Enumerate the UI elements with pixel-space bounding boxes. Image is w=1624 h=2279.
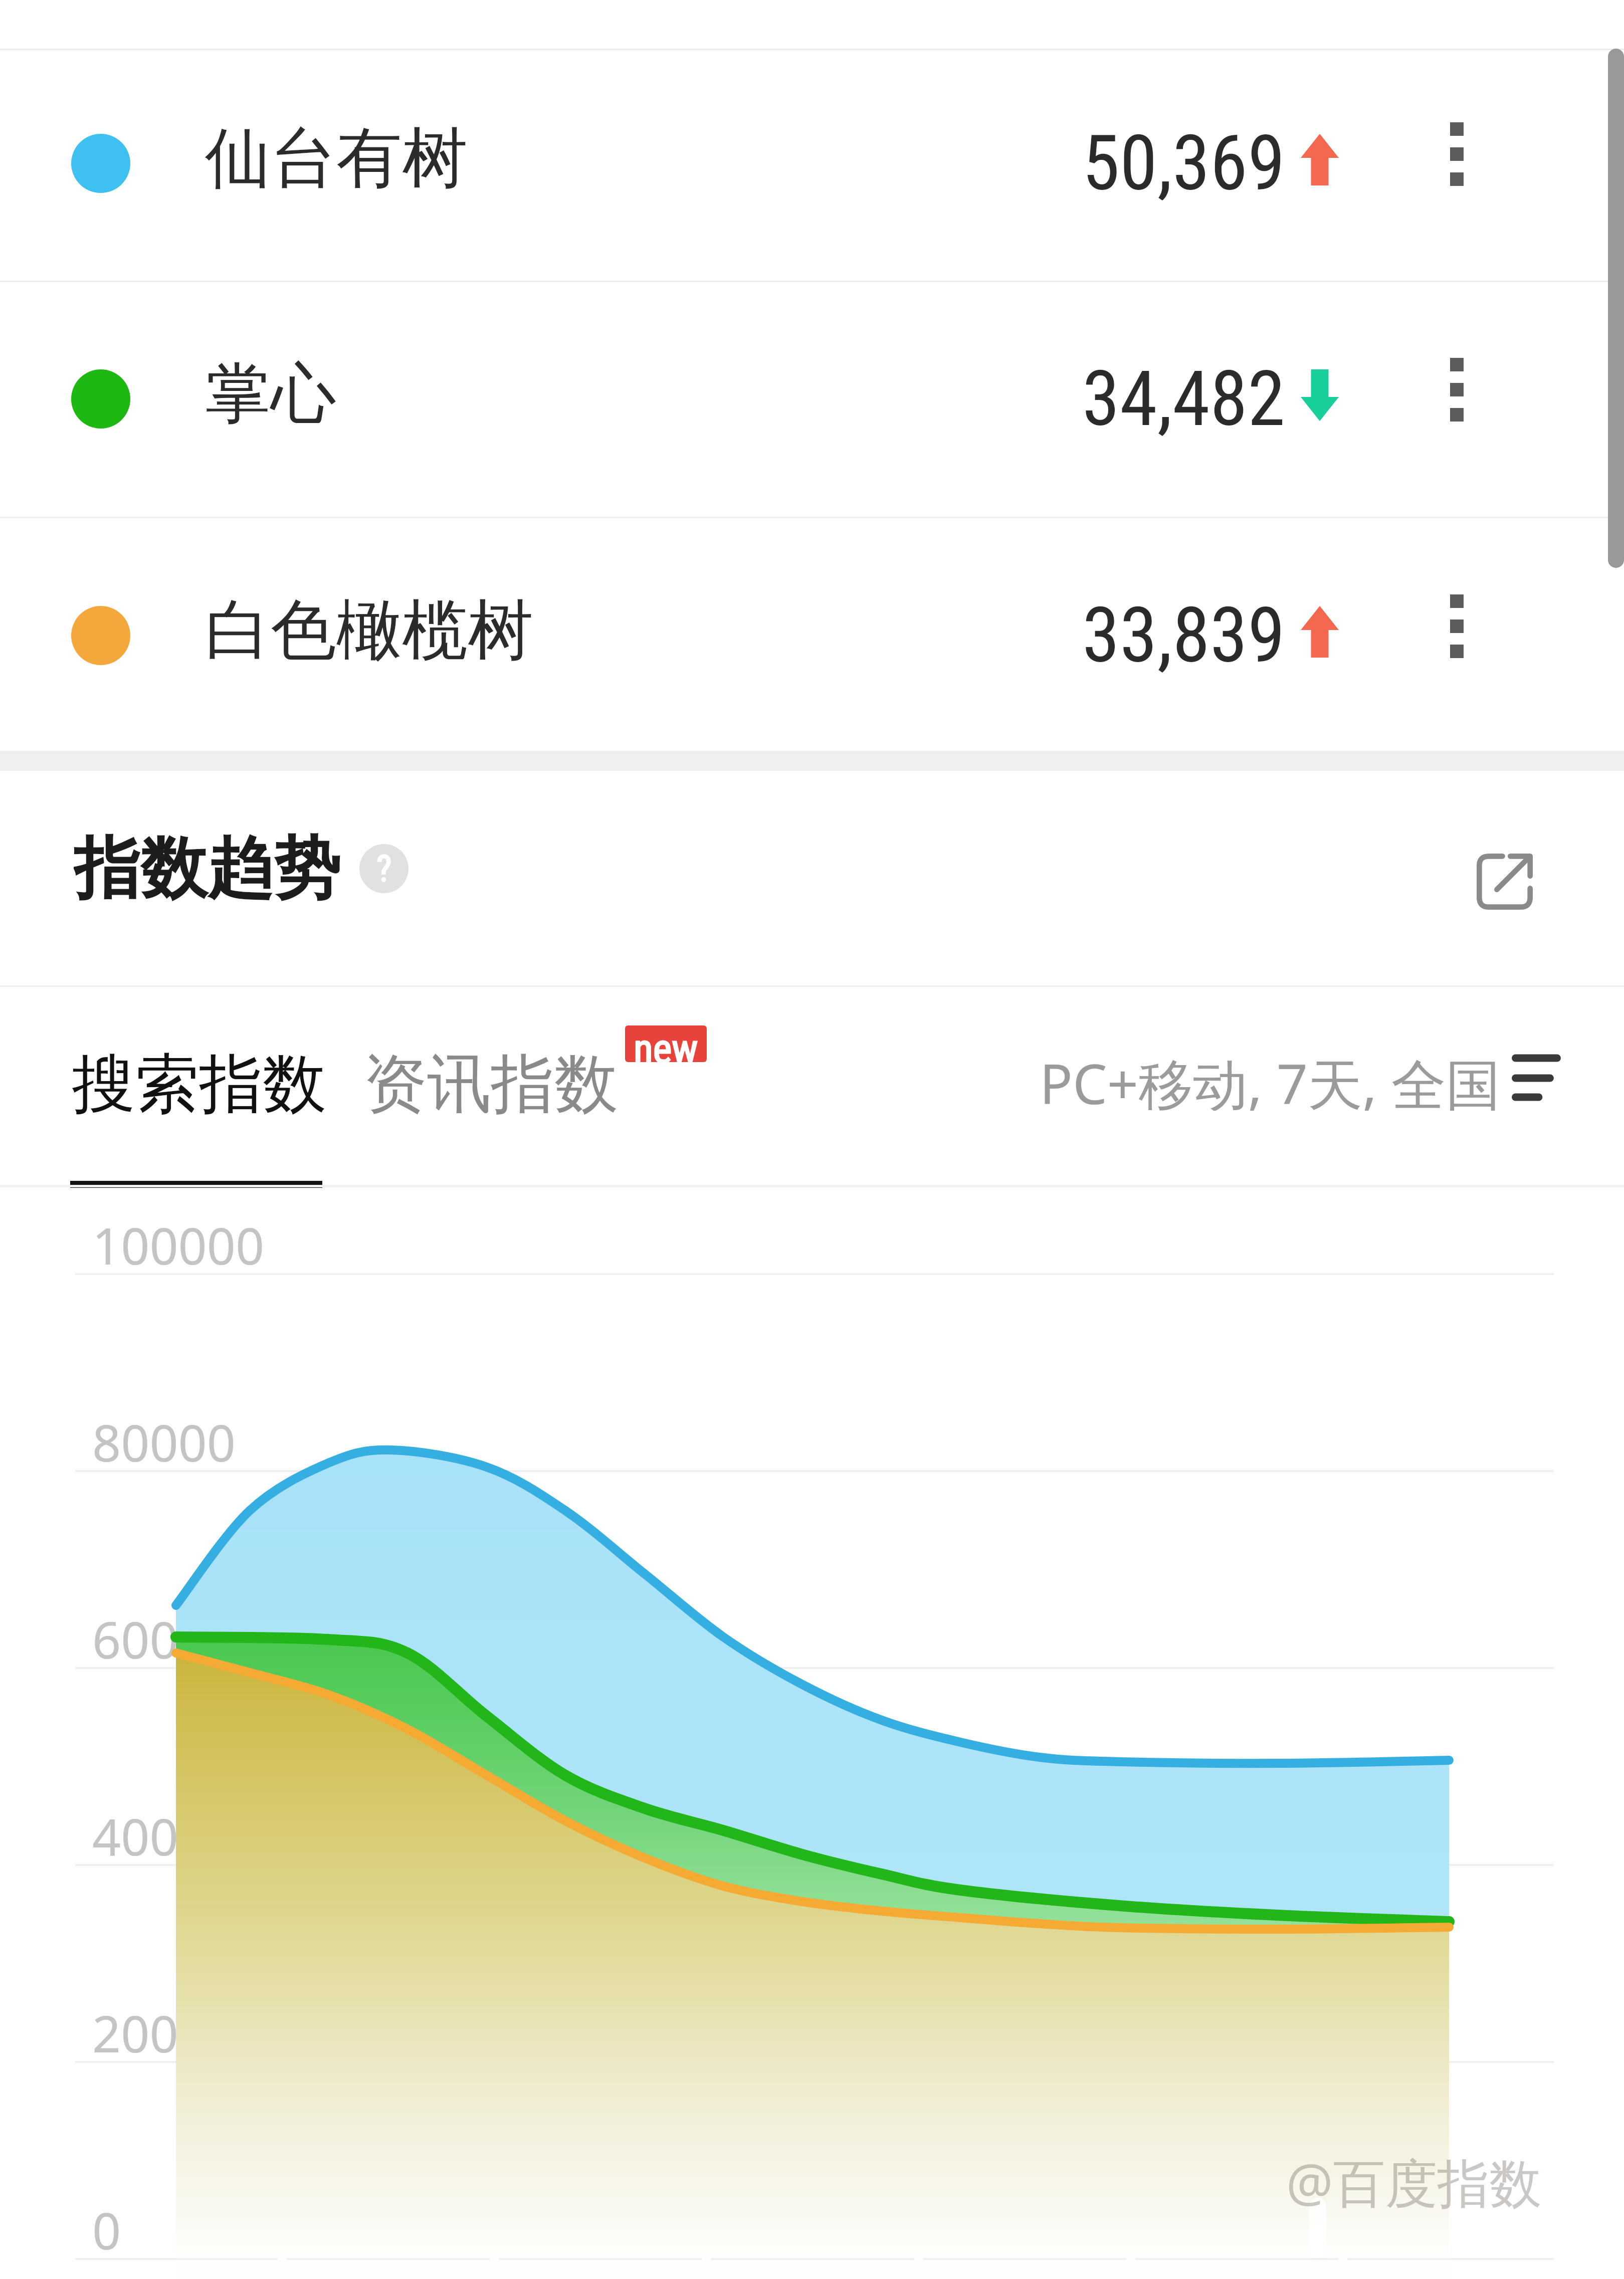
staticText: 80000 [92, 1408, 236, 1476]
button[interactable]: PC+移动, 7天, 全国 [1040, 1046, 1561, 1111]
staticText: 100000 [92, 1211, 265, 1279]
staticText: 仙台有树 [205, 117, 468, 200]
button[interactable]: 白色橄榄树 [0, 519, 1624, 752]
button[interactable]: 资讯指数 [363, 1045, 618, 1125]
button[interactable]: Open full screen [1442, 819, 1567, 944]
staticText: 0 [92, 2196, 121, 2264]
staticText: PC+移动, 7天, 全国 [1040, 1046, 1501, 1111]
button[interactable]: 搜索指数 [72, 1045, 326, 1125]
button[interactable]: More options [1396, 96, 1517, 212]
button[interactable]: 指数趋势 [74, 827, 409, 910]
staticText: 40000 [92, 1802, 236, 1870]
button[interactable]: 掌心 [0, 283, 1624, 515]
staticText: 60000 [92, 1605, 236, 1673]
button[interactable]: Help [359, 844, 409, 893]
staticText: new [634, 1025, 698, 1062]
button[interactable]: More options [1396, 332, 1517, 447]
staticText: 50,369 [1082, 119, 1286, 208]
staticText: 34,482 [1082, 354, 1286, 444]
staticText: 白色橄榄树 [205, 589, 533, 672]
staticText: 33,839 [1082, 591, 1286, 680]
button[interactable]: 仙台有树 [0, 47, 1624, 280]
staticText: 20000 [92, 1999, 236, 2067]
staticText: ? [376, 848, 392, 890]
staticText: 指数趋势 [74, 827, 340, 910]
staticText: 掌心 [205, 353, 336, 436]
button[interactable]: More options [1396, 568, 1517, 684]
staticText: @百度指数 [1286, 2146, 1542, 2217]
